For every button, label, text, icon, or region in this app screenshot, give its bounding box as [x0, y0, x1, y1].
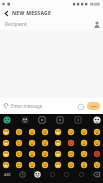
button[interactable]	[64, 126, 77, 137]
button[interactable]	[12, 126, 25, 137]
button[interactable]	[47, 170, 58, 179]
staticText: Enter message	[11, 103, 43, 109]
button[interactable]	[17, 170, 28, 179]
button[interactable]	[0, 148, 12, 159]
button[interactable]: Enter message	[0, 98, 103, 114]
button[interactable]	[32, 170, 43, 179]
button[interactable]	[38, 137, 51, 148]
button[interactable]	[77, 126, 90, 137]
button[interactable]	[0, 98, 11, 114]
button[interactable]	[51, 148, 64, 159]
button[interactable]	[71, 114, 84, 126]
button[interactable]	[90, 114, 103, 126]
button[interactable]	[90, 137, 103, 148]
button[interactable]	[87, 102, 100, 110]
button[interactable]	[64, 137, 77, 148]
button[interactable]	[77, 159, 90, 170]
button[interactable]	[53, 114, 66, 126]
button[interactable]	[51, 159, 64, 170]
staticText: ABC	[4, 172, 11, 177]
button[interactable]	[76, 102, 85, 111]
button[interactable]	[0, 114, 13, 126]
button[interactable]	[77, 148, 90, 159]
button[interactable]	[64, 148, 77, 159]
button[interactable]	[91, 170, 102, 179]
button[interactable]	[38, 159, 51, 170]
button[interactable]	[25, 137, 38, 148]
button[interactable]	[0, 137, 12, 148]
button[interactable]	[25, 159, 38, 170]
button[interactable]	[61, 170, 72, 179]
staticText: Recipient	[5, 21, 27, 28]
button[interactable]	[0, 126, 12, 137]
button[interactable]	[0, 159, 12, 170]
button[interactable]	[25, 126, 38, 137]
button[interactable]	[76, 170, 87, 179]
button[interactable]: ABC	[1, 170, 13, 179]
button[interactable]	[64, 159, 77, 170]
button[interactable]	[51, 126, 64, 137]
button[interactable]	[12, 159, 25, 170]
button[interactable]	[35, 114, 48, 126]
button[interactable]	[12, 148, 25, 159]
button[interactable]: Recipient	[0, 18, 103, 30]
staticText: NEW MESSAGE	[12, 10, 52, 17]
button[interactable]	[0, 8, 12, 18]
button[interactable]	[90, 126, 103, 137]
button[interactable]	[38, 126, 51, 137]
button[interactable]	[51, 137, 64, 148]
button[interactable]	[18, 114, 31, 126]
button[interactable]	[91, 18, 103, 30]
button[interactable]	[25, 148, 38, 159]
button[interactable]	[90, 159, 103, 170]
button[interactable]	[77, 137, 90, 148]
button[interactable]	[12, 137, 25, 148]
button[interactable]	[90, 148, 103, 159]
button[interactable]	[38, 148, 51, 159]
